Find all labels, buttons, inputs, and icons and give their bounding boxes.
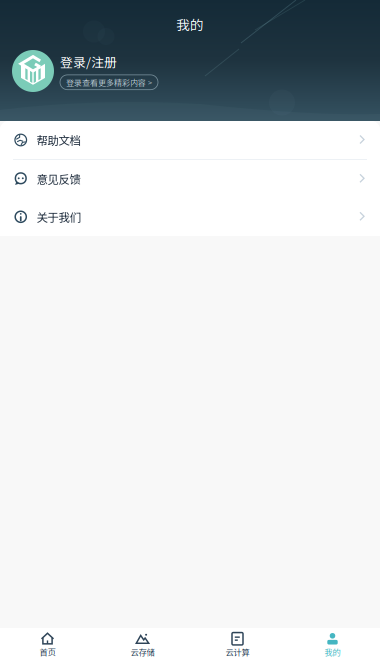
button[interactable]: 云计算 — [190, 628, 285, 660]
button[interactable]: 我的 — [285, 628, 380, 660]
staticText: 帮助文档 — [36, 132, 80, 148]
button[interactable]: 头像 — [12, 50, 54, 92]
button[interactable]: 云存储 — [95, 628, 190, 660]
staticText: 首页 — [39, 646, 55, 658]
staticText: 意见反馈 — [36, 170, 80, 187]
button[interactable]: 帮助文档 — [0, 121, 380, 159]
staticText: 我的 — [324, 646, 340, 658]
button[interactable]: 首页 — [0, 628, 95, 660]
button[interactable]: 关于我们 — [0, 198, 380, 236]
staticText: 登录查看更多精彩内容 — [66, 76, 146, 88]
staticText: 登录/注册 — [60, 52, 117, 71]
staticText: 我的 — [176, 14, 204, 34]
staticText: 关于我们 — [36, 208, 80, 225]
button[interactable]: 意见反馈 — [0, 160, 380, 198]
staticText: > — [148, 77, 152, 88]
staticText: 云计算 — [225, 646, 249, 658]
staticText: 云存储 — [130, 646, 154, 658]
